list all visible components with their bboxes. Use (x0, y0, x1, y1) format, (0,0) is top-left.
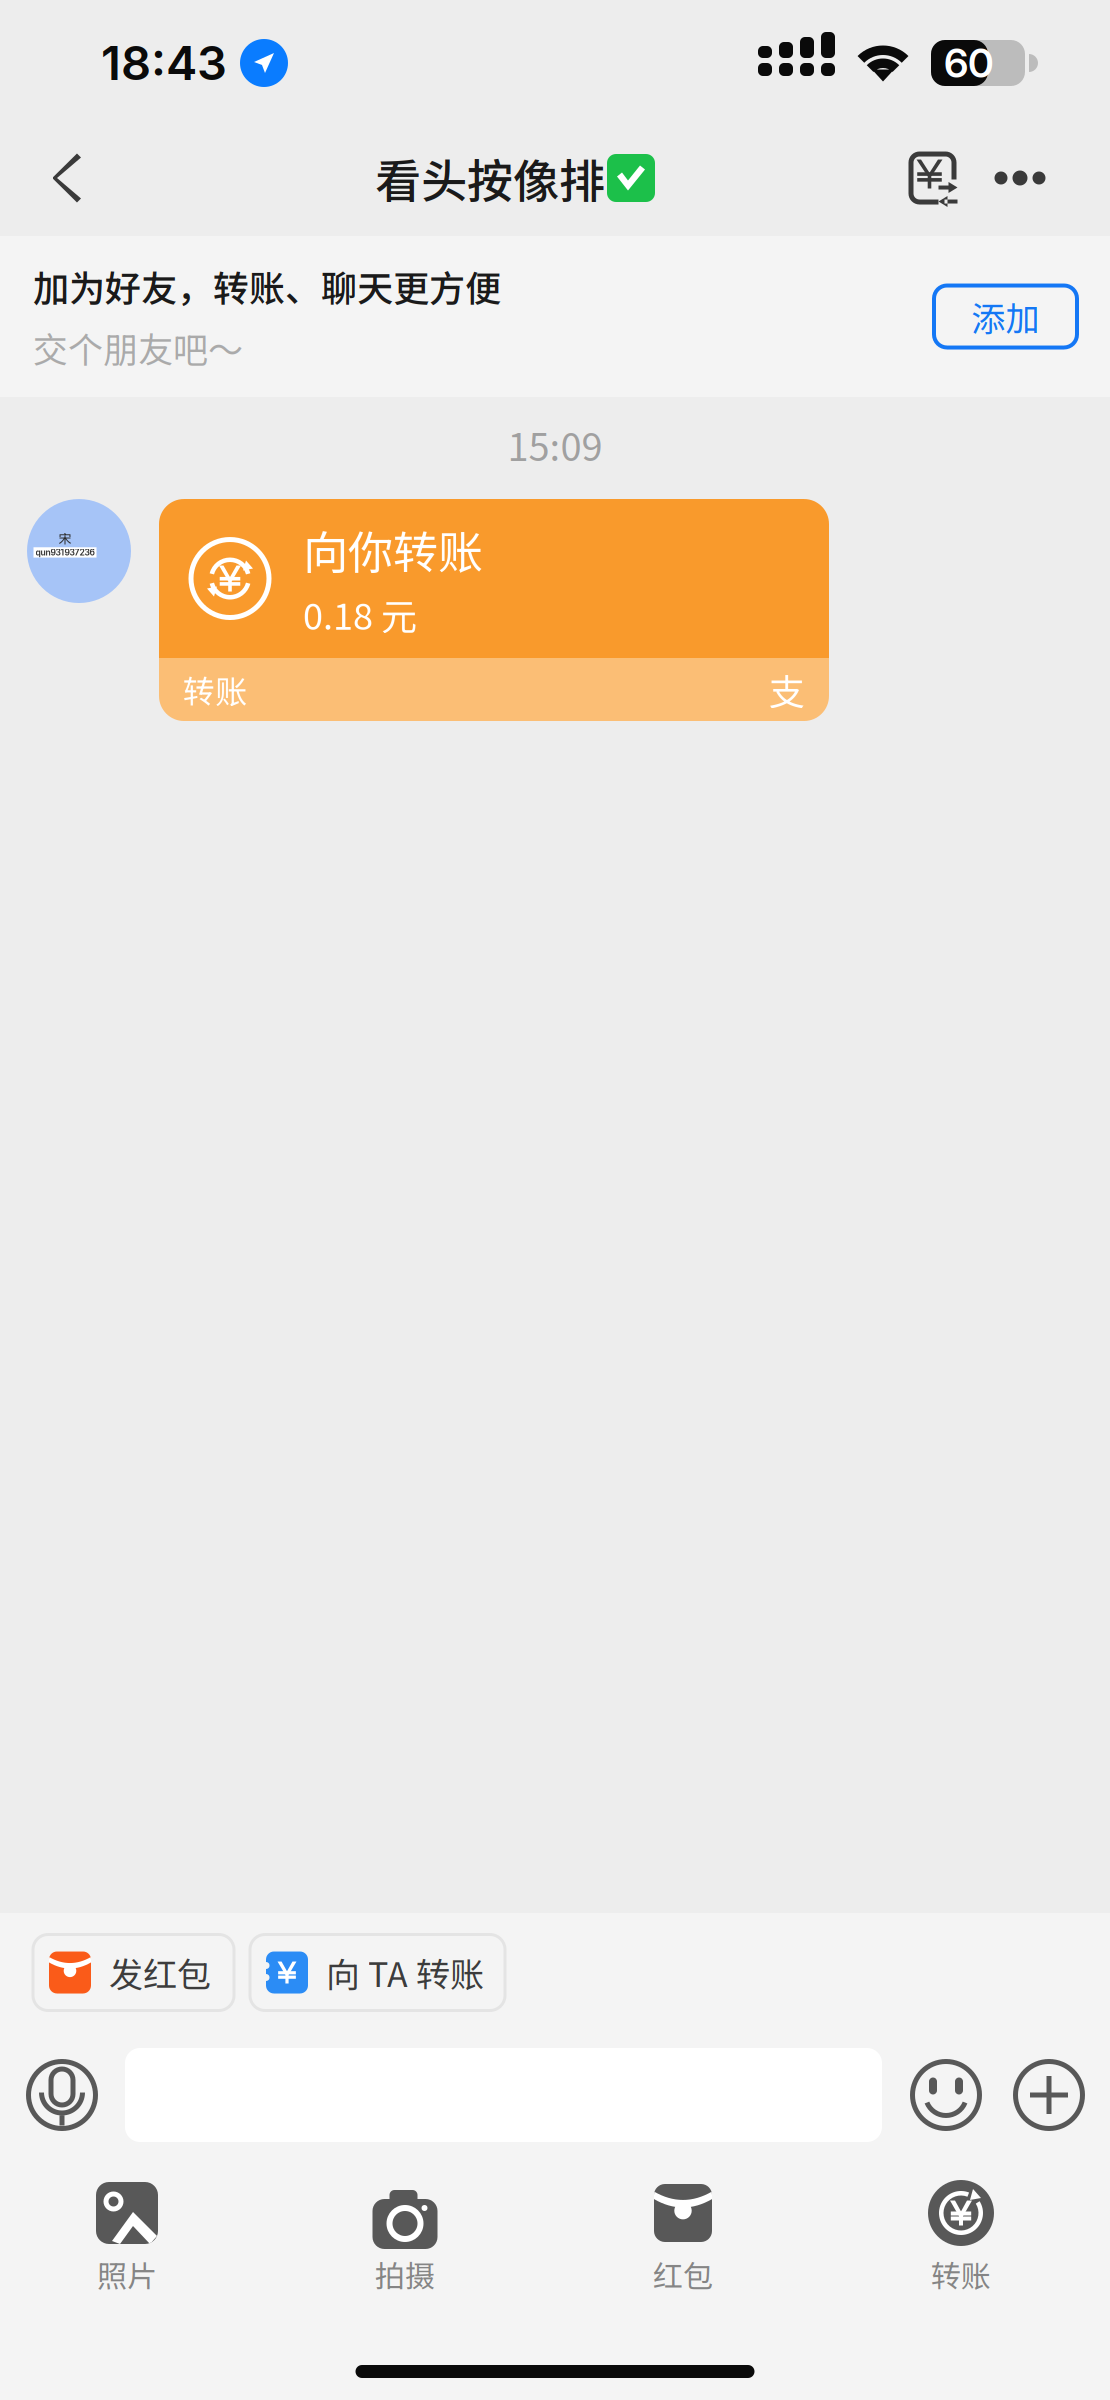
button[interactable]: 拍摄 (266, 2158, 544, 2318)
staticText: 发红包 (109, 1948, 211, 1997)
staticText: 转账 (931, 2253, 991, 2296)
staticText: 18:43 (101, 35, 227, 91)
button[interactable]: 转账 (822, 2158, 1100, 2318)
staticText: 向 TA 转账 (326, 1948, 484, 1997)
button[interactable]: More (975, 120, 1065, 236)
button[interactable]: 照片 (0, 2158, 266, 2318)
button[interactable]: Transfer (888, 120, 977, 236)
button[interactable]: 向你转账 (159, 499, 829, 721)
staticText: 转账 (183, 666, 247, 713)
staticText: 向你转账 (303, 517, 483, 582)
button[interactable]: 添加 (934, 285, 1077, 347)
staticText: 宋 (58, 528, 71, 547)
button[interactable]: 红包 (544, 2158, 822, 2318)
staticText: 添加 (971, 292, 1039, 341)
button[interactable]: 向 TA 转账 (250, 1934, 505, 2010)
staticText: 交个朋友吧～ (33, 322, 243, 373)
staticText: 60 (944, 39, 994, 87)
button[interactable]: Back (22, 120, 112, 236)
staticText: 支 (769, 663, 805, 716)
staticText: 看头按像排 (375, 145, 605, 211)
staticText: 加为好友，转账、聊天更方便 (33, 260, 501, 312)
button[interactable]: Voice input (26, 2059, 98, 2131)
staticText: qun931937236 (35, 547, 94, 558)
staticText: 照片 (97, 2253, 157, 2296)
staticText: 0.18 元 (303, 588, 417, 640)
button[interactable]: Emoji (910, 2059, 982, 2131)
button[interactable]: 发红包 (33, 1934, 234, 2010)
staticText: 红包 (653, 2253, 713, 2296)
staticText: 拍摄 (375, 2253, 435, 2296)
button[interactable]: More actions (1013, 2059, 1085, 2131)
staticText: 15:09 (507, 417, 602, 472)
